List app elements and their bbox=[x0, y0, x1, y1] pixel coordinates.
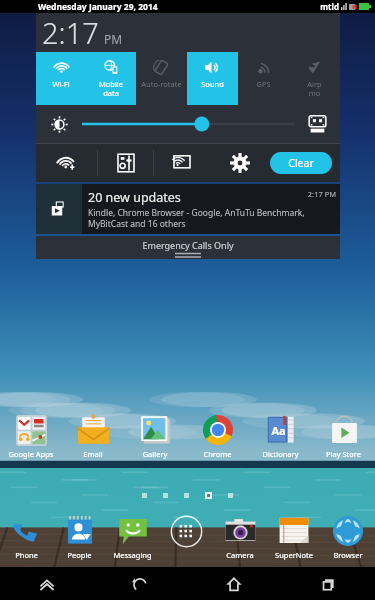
staticText: People bbox=[53, 550, 106, 560]
staticText: Auto-rotate bbox=[136, 79, 187, 89]
staticText: Browser bbox=[321, 550, 375, 560]
button[interactable]: Auto brightness bbox=[294, 105, 340, 143]
staticText: Phone bbox=[0, 550, 53, 560]
button[interactable]: All apps bbox=[159, 512, 213, 565]
button[interactable]: Phone bbox=[0, 512, 53, 565]
button[interactable]: GPS bbox=[238, 52, 289, 105]
button[interactable]: Camera bbox=[213, 512, 267, 565]
staticText: mtld bbox=[320, 1, 339, 12]
button[interactable]: Gallery bbox=[124, 411, 186, 466]
button[interactable]: Auto-rotate bbox=[136, 52, 187, 105]
button[interactable]: Audio wizard bbox=[98, 144, 153, 182]
staticText: 2:17 PM bbox=[307, 189, 336, 199]
button[interactable]: Recents bbox=[281, 567, 375, 600]
staticText: Mobile data bbox=[86, 79, 136, 98]
button[interactable]: SuperNote bbox=[267, 512, 321, 565]
button[interactable]: Brightness slider bbox=[82, 105, 294, 143]
staticText: Play Store bbox=[312, 449, 375, 459]
button[interactable]: Back bbox=[93, 567, 187, 600]
button[interactable]: Cast screen bbox=[154, 144, 209, 182]
button[interactable]: Google Apps bbox=[0, 411, 62, 466]
button[interactable]: Brightness bbox=[36, 105, 82, 143]
staticText: Google Apps bbox=[0, 449, 62, 459]
button[interactable]: Mobile data bbox=[86, 52, 136, 105]
staticText: Aa bbox=[271, 423, 286, 438]
staticText: Clear bbox=[288, 156, 314, 170]
staticText: Wi-Fi bbox=[36, 79, 86, 89]
staticText: PM bbox=[104, 31, 123, 47]
button[interactable]: Chrome bbox=[186, 411, 249, 466]
staticText: Gallery bbox=[124, 449, 186, 459]
staticText: Wednesday January 29, 2014 bbox=[38, 1, 158, 13]
staticText: Email bbox=[62, 449, 124, 459]
staticText: Dictionary bbox=[249, 449, 312, 459]
button[interactable]: Wi-Fi settings bbox=[36, 144, 97, 182]
button[interactable]: Sound bbox=[187, 52, 238, 105]
button[interactable]: Aa bbox=[249, 411, 312, 466]
button[interactable]: Messaging bbox=[106, 512, 159, 565]
staticText: Kindle, Chrome Browser - Google, AnTuTu … bbox=[88, 207, 336, 229]
button[interactable]: Browser bbox=[321, 512, 375, 565]
staticText: Camera bbox=[213, 550, 267, 560]
button[interactable]: Play Store bbox=[312, 411, 375, 466]
staticText: Emergency Calls Only bbox=[36, 239, 340, 251]
staticText: 2:17 bbox=[42, 13, 99, 52]
button[interactable]: Settings bbox=[209, 144, 270, 182]
staticText: GPS bbox=[238, 79, 289, 89]
button[interactable]: Airp mo bbox=[289, 52, 340, 105]
button[interactable]: People bbox=[53, 512, 106, 565]
button[interactable]: Home bbox=[187, 567, 281, 600]
button[interactable]: Wi-Fi bbox=[36, 52, 86, 105]
staticText: Sound bbox=[187, 79, 238, 89]
button[interactable]: Email bbox=[62, 411, 124, 466]
staticText: Chrome bbox=[186, 449, 249, 459]
staticText: Airp mo bbox=[289, 79, 340, 98]
staticText: SuperNote bbox=[267, 550, 321, 560]
button[interactable]: Clear bbox=[270, 152, 332, 174]
button[interactable]: 20 new updates bbox=[36, 184, 340, 234]
staticText: 20 new updates bbox=[88, 189, 307, 206]
button[interactable]: Emergency Calls Only bbox=[36, 236, 340, 259]
button[interactable]: Menu bbox=[0, 567, 93, 600]
staticText: Messaging bbox=[106, 550, 159, 560]
